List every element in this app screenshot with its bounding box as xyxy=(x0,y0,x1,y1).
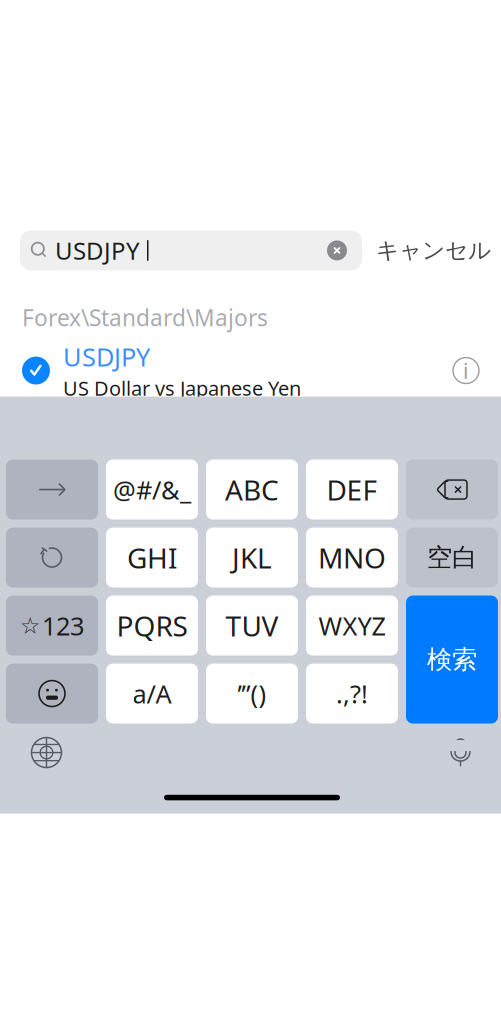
staticText: キャンセル xyxy=(376,236,491,264)
button[interactable]: Next candidate xyxy=(6,460,98,520)
button[interactable]: Symbols and numbers xyxy=(6,596,98,656)
button[interactable]: キャンセル xyxy=(376,230,491,270)
button[interactable]: Undo xyxy=(6,528,98,588)
button[interactable]: ABC xyxy=(206,460,298,520)
staticText: a/A xyxy=(132,677,171,710)
button[interactable]: Dictation xyxy=(434,731,486,775)
staticText: US Dollar vs Japanese Yen xyxy=(63,375,301,401)
staticText: i xyxy=(463,356,469,385)
button[interactable]: Emoji xyxy=(6,664,98,724)
button[interactable]: ’”() xyxy=(206,664,298,724)
staticText: .,?! xyxy=(336,677,368,710)
button[interactable]: DEF xyxy=(306,460,398,520)
staticText: 空白 xyxy=(427,542,477,573)
staticText: ABC xyxy=(225,471,279,508)
staticText: ☆ xyxy=(20,613,40,638)
staticText: PQRS xyxy=(116,607,187,644)
button[interactable]: WXYZ xyxy=(306,596,398,656)
staticText: WXYZ xyxy=(318,609,385,642)
button[interactable]: @#/&_ xyxy=(106,460,198,520)
staticText: @#/&_ xyxy=(113,473,191,506)
button[interactable]: MNO xyxy=(306,528,398,588)
staticText: 123 xyxy=(42,609,84,642)
staticText: USDJPY xyxy=(63,340,150,374)
button[interactable]: JKL xyxy=(206,528,298,588)
staticText: USDJPY xyxy=(55,234,140,266)
staticText: TUV xyxy=(225,607,278,644)
button[interactable]: .,?! xyxy=(306,664,398,724)
button[interactable]: Delete xyxy=(406,460,498,520)
button[interactable]: GHI xyxy=(106,528,198,588)
button[interactable]: 空白 xyxy=(406,528,498,588)
button[interactable]: 検索 xyxy=(406,596,498,724)
staticText: GHI xyxy=(127,539,177,576)
staticText: ’”() xyxy=(237,677,266,710)
button[interactable]: a/A xyxy=(106,664,198,724)
staticText: Forex\Standard\Majors xyxy=(22,302,268,332)
staticText: JKL xyxy=(232,539,272,576)
button[interactable]: TUV xyxy=(206,596,298,656)
button[interactable]: PQRS xyxy=(106,596,198,656)
staticText: DEF xyxy=(326,471,377,508)
button[interactable]: Switch keyboard xyxy=(17,728,75,778)
button[interactable]: USDJPY xyxy=(0,345,501,397)
staticText: MNO xyxy=(318,539,386,576)
button[interactable]: Clear text xyxy=(323,230,351,270)
staticText: 検索 xyxy=(427,644,477,675)
